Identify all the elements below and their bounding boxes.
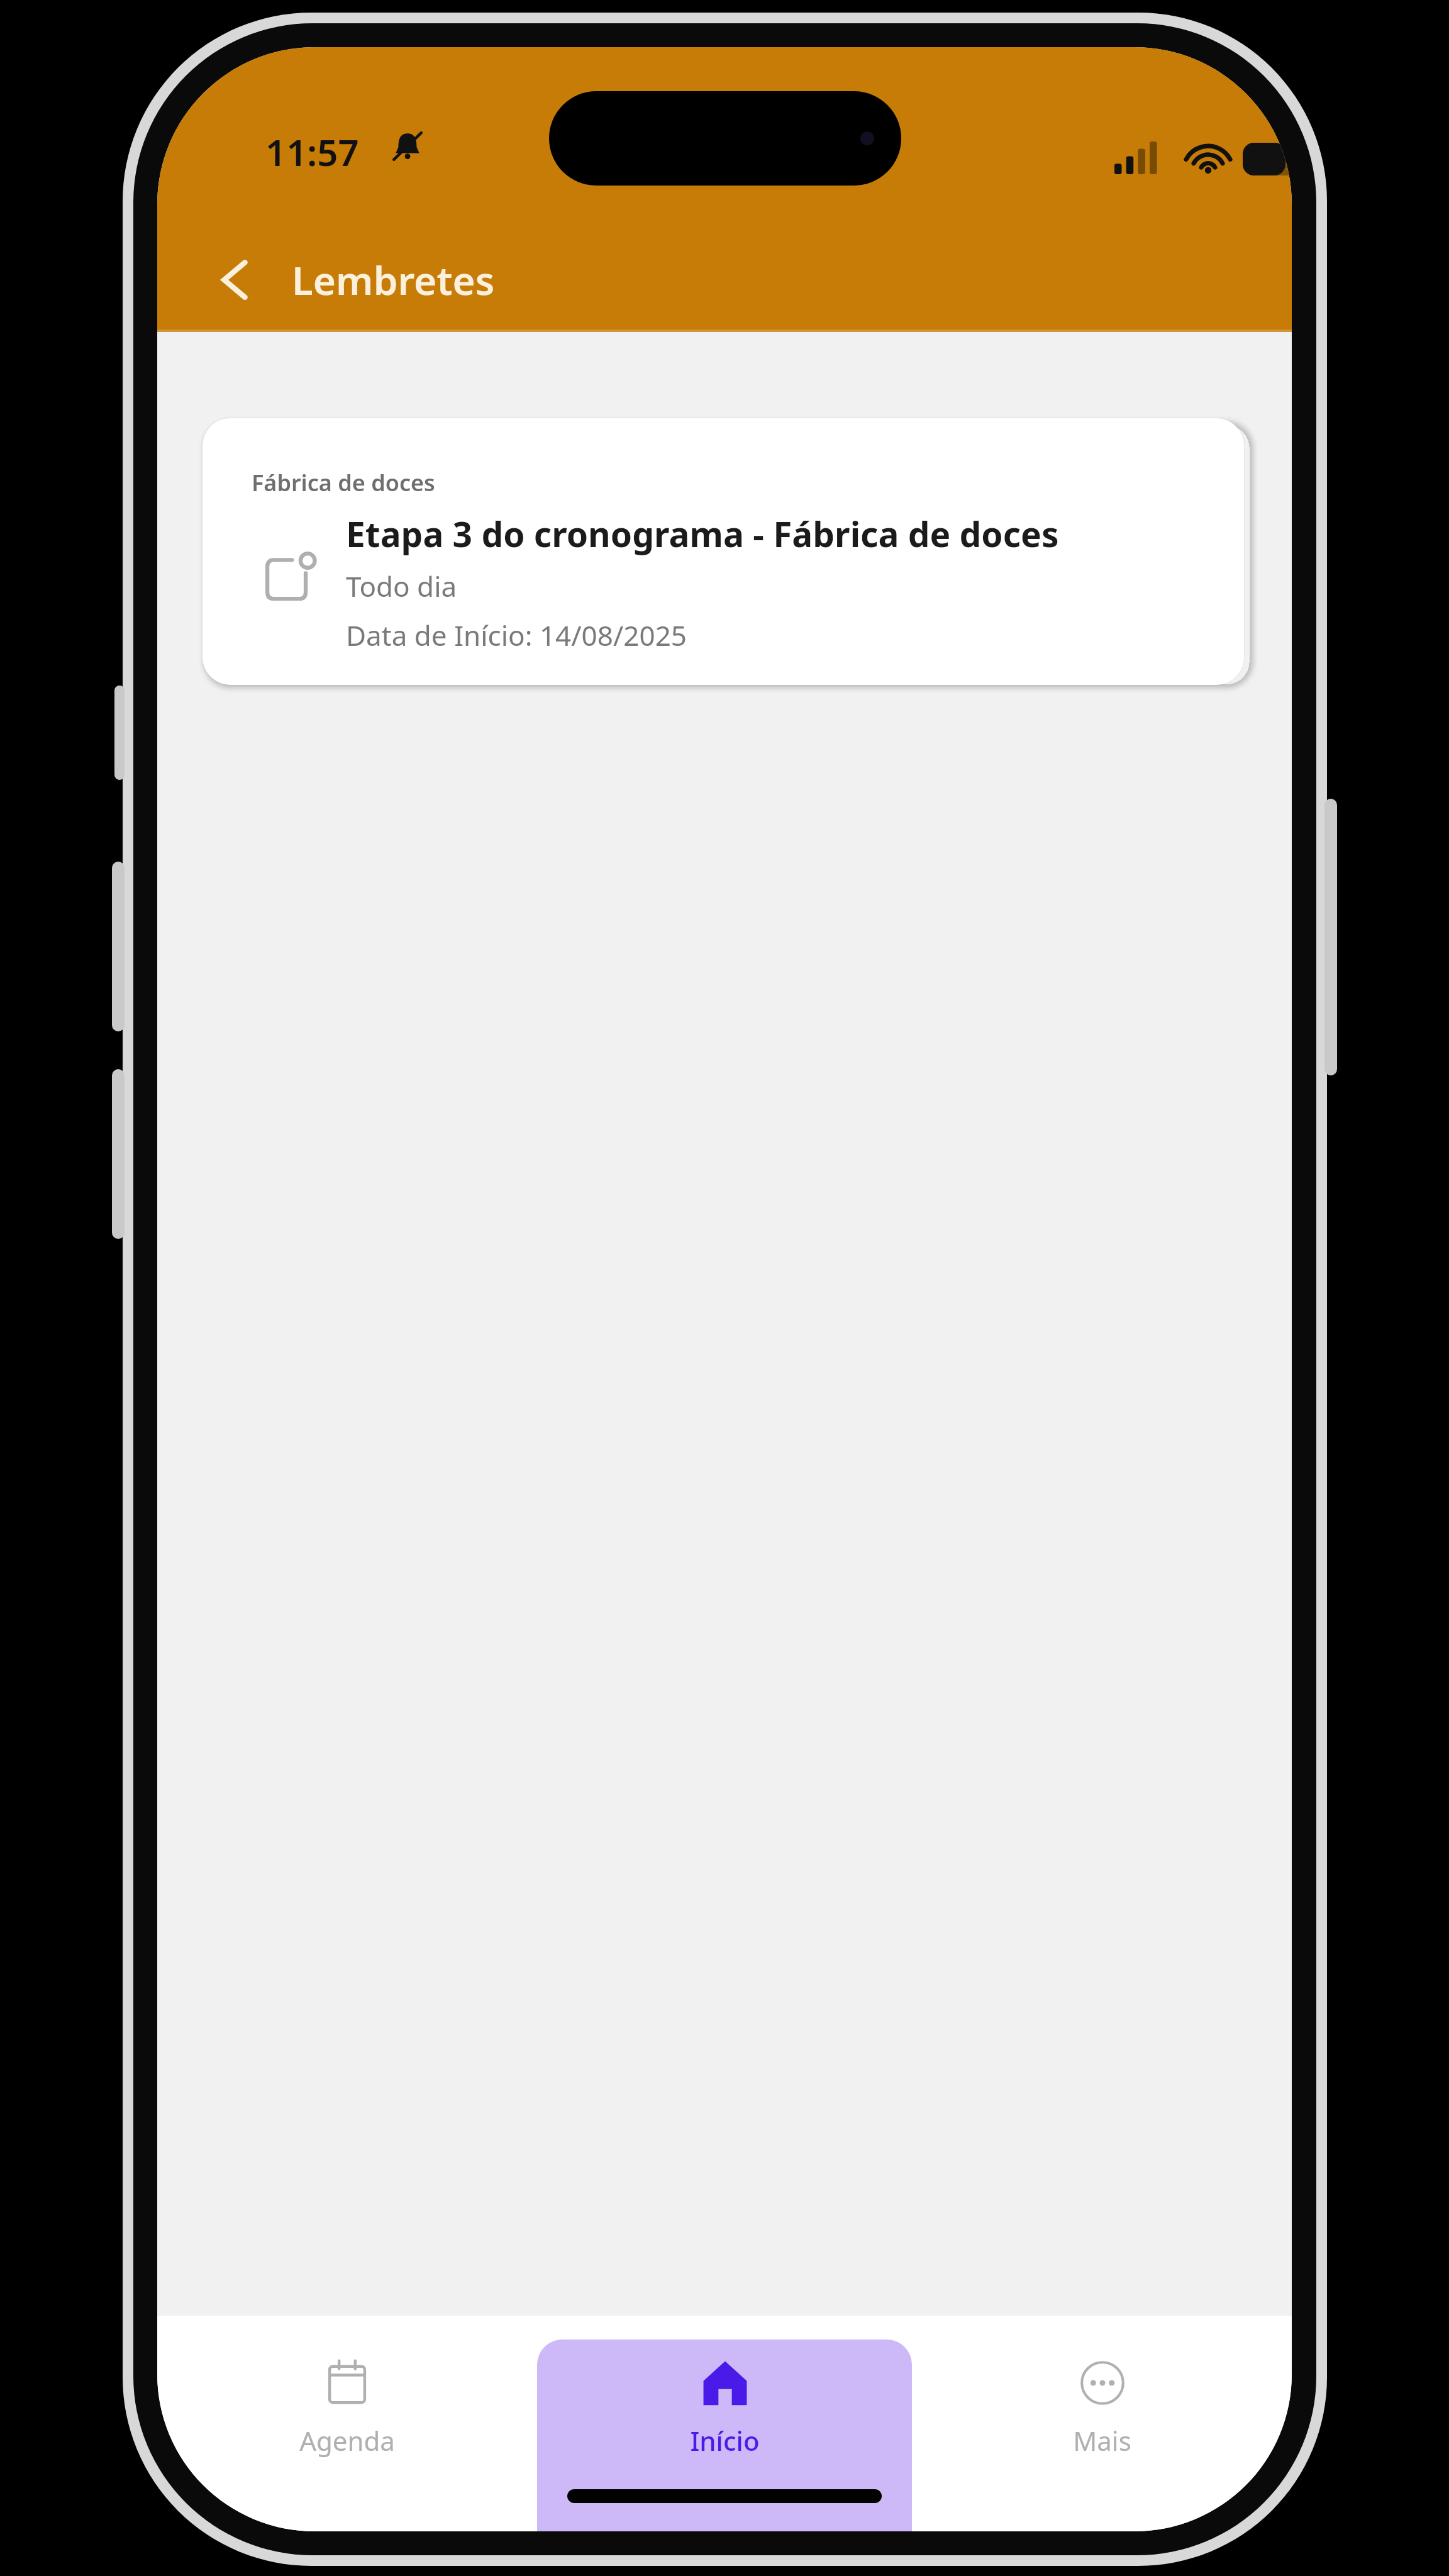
- staticText: Lembretes: [292, 253, 495, 306]
- staticText: Início: [690, 2423, 760, 2458]
- staticText: Data de Início: 14/08/2025: [346, 616, 687, 654]
- staticText: Etapa 3 do cronograma - Fábrica de doces: [346, 510, 1059, 557]
- button[interactable]: Voltar: [195, 239, 277, 321]
- button[interactable]: Fábrica de doces: [203, 418, 1244, 685]
- button[interactable]: Mais: [976, 2340, 1228, 2531]
- staticText: Mais: [1073, 2423, 1131, 2458]
- staticText: Agenda: [299, 2423, 395, 2458]
- staticText: 11:57: [265, 127, 359, 177]
- staticText: Fábrica de doces: [252, 467, 435, 498]
- staticText: Todo dia: [346, 567, 457, 605]
- button[interactable]: Início: [537, 2340, 912, 2531]
- button[interactable]: Agenda: [221, 2340, 473, 2531]
